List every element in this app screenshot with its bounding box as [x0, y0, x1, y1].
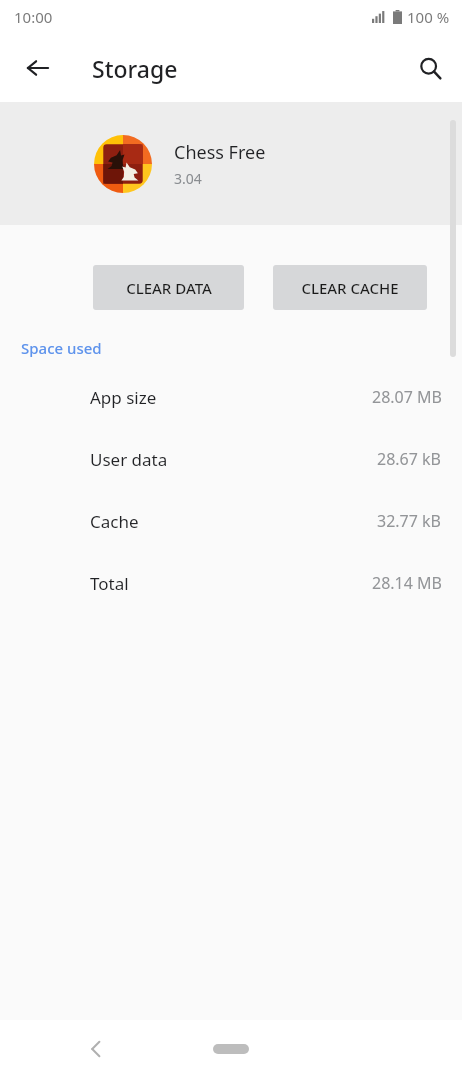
- staticText: Space used: [21, 338, 102, 358]
- staticText: 3.04: [174, 169, 202, 188]
- staticText: App size: [90, 386, 157, 409]
- staticText: 28.14 MB: [372, 572, 442, 594]
- button[interactable]: App size: [0, 366, 462, 428]
- button[interactable]: User data: [0, 428, 462, 490]
- staticText: User data: [90, 448, 168, 471]
- staticText: 10:00: [14, 7, 53, 27]
- staticText: 28.07 MB: [372, 386, 442, 408]
- staticText: 32.77 kB: [377, 510, 442, 532]
- button[interactable]: CLEAR CACHE: [273, 265, 427, 310]
- button[interactable]: Home: [207, 1031, 255, 1067]
- button[interactable]: Total: [0, 552, 462, 614]
- staticText: Total: [90, 572, 129, 595]
- button[interactable]: Cache: [0, 490, 462, 552]
- staticText: 28.67 kB: [377, 448, 442, 470]
- button[interactable]: Back: [14, 44, 62, 92]
- staticText: 100 %: [407, 7, 450, 27]
- staticText: Cache: [90, 510, 139, 533]
- staticText: Chess Free: [174, 140, 266, 165]
- button[interactable]: Search: [406, 44, 454, 92]
- staticText: Storage: [92, 53, 178, 84]
- staticText: CLEAR DATA: [126, 278, 212, 298]
- button[interactable]: Back: [73, 1025, 121, 1073]
- staticText: CLEAR CACHE: [301, 278, 399, 298]
- button[interactable]: CLEAR DATA: [93, 265, 244, 310]
